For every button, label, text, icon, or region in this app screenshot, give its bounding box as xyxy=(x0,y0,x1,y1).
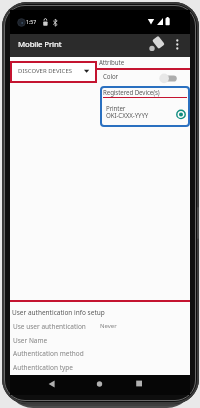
button[interactable] xyxy=(10,320,190,334)
staticText: OKI-CXXX-YYYY xyxy=(106,111,149,119)
button[interactable] xyxy=(10,334,190,348)
staticText: Never xyxy=(100,322,117,330)
staticText: 1:57 xyxy=(26,18,37,25)
button[interactable] xyxy=(98,71,190,84)
staticText: Authentication type xyxy=(13,363,73,372)
button[interactable] xyxy=(124,375,156,395)
button[interactable]: DISCOVER DEVICES xyxy=(10,61,97,83)
button[interactable] xyxy=(36,375,68,395)
staticText: User authentication info setup xyxy=(12,308,105,317)
button[interactable] xyxy=(10,361,190,375)
staticText: Attribute xyxy=(99,58,125,66)
staticText: Use user authentication xyxy=(13,322,86,331)
staticText: User Name xyxy=(13,336,48,345)
staticText: Mobile Print xyxy=(18,39,62,50)
staticText: Printer xyxy=(106,104,126,112)
button[interactable] xyxy=(140,34,170,57)
staticText: Registered Device(s) xyxy=(103,88,160,96)
button[interactable] xyxy=(172,34,190,57)
staticText: DISCOVER DEVICES xyxy=(18,67,73,75)
button[interactable] xyxy=(10,306,190,319)
staticText: Authentication method xyxy=(13,349,84,358)
button[interactable] xyxy=(10,347,190,361)
button[interactable] xyxy=(100,86,190,127)
button[interactable] xyxy=(84,375,116,395)
staticText: Color xyxy=(103,72,119,80)
